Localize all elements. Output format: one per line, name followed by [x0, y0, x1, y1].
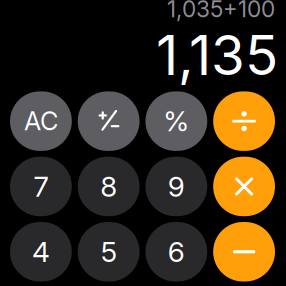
button[interactable]: 4	[10, 222, 72, 281]
button[interactable]: Divide	[213, 91, 275, 151]
staticText: 4	[32, 235, 50, 269]
button[interactable]: 6	[145, 222, 207, 281]
staticText: 5	[101, 235, 117, 269]
staticText: AC	[24, 106, 58, 136]
button[interactable]: Plus minus	[78, 91, 139, 151]
button[interactable]: 5	[78, 222, 139, 281]
staticText: 7	[33, 169, 48, 203]
staticText: 1,135	[156, 22, 278, 88]
staticText: 8	[100, 169, 117, 203]
button[interactable]: 8	[78, 157, 139, 216]
button[interactable]: 7	[10, 157, 72, 216]
staticText: 1,035+100	[167, 0, 275, 23]
staticText: %	[163, 104, 189, 138]
button[interactable]: Subtract	[213, 222, 275, 281]
button[interactable]: AC	[10, 91, 72, 151]
button[interactable]: 9	[145, 157, 207, 216]
staticText: 6	[168, 235, 185, 269]
staticText: 9	[168, 169, 185, 203]
button[interactable]: Multiply	[213, 157, 275, 216]
button[interactable]: %	[145, 91, 207, 151]
